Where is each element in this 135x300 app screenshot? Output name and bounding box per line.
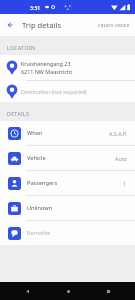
staticText: Kruishenengang 23 bbox=[21, 60, 71, 67]
staticText: Passengers bbox=[27, 179, 123, 187]
staticText: When bbox=[27, 129, 109, 137]
button[interactable]: Remarks bbox=[0, 221, 135, 245]
staticText: Vehicle bbox=[27, 154, 115, 162]
button[interactable]: Destination (not required) bbox=[0, 81, 135, 102]
button[interactable]: CREATE ORDER bbox=[94, 19, 134, 32]
button[interactable]: When bbox=[0, 121, 135, 145]
staticText: Auto bbox=[115, 155, 127, 162]
staticText: Remarks bbox=[27, 229, 127, 237]
staticText: 6211 NW Maastricht bbox=[21, 68, 73, 75]
button[interactable]: Kruishenengang 23 bbox=[0, 55, 135, 80]
staticText: A.S.A.P. bbox=[109, 130, 127, 137]
staticText: Destination (not required) bbox=[21, 88, 87, 95]
button[interactable]: Passengers bbox=[0, 171, 135, 195]
staticText: CREATE ORDER bbox=[98, 23, 130, 28]
staticText: LOCATION bbox=[7, 44, 36, 51]
staticText: Unknown bbox=[27, 204, 127, 212]
button[interactable]: Home bbox=[61, 284, 75, 298]
button[interactable]: Unknown bbox=[0, 196, 135, 220]
staticText: 1 bbox=[123, 180, 127, 187]
button[interactable]: Vehicle bbox=[0, 146, 135, 170]
staticText: Trip details bbox=[22, 20, 62, 30]
button[interactable]: Recents bbox=[101, 284, 115, 298]
button[interactable]: Back bbox=[1, 16, 19, 34]
button[interactable]: Back bbox=[20, 284, 34, 298]
staticText: 3:51 bbox=[30, 4, 41, 11]
staticText: DETAILS bbox=[7, 110, 30, 117]
